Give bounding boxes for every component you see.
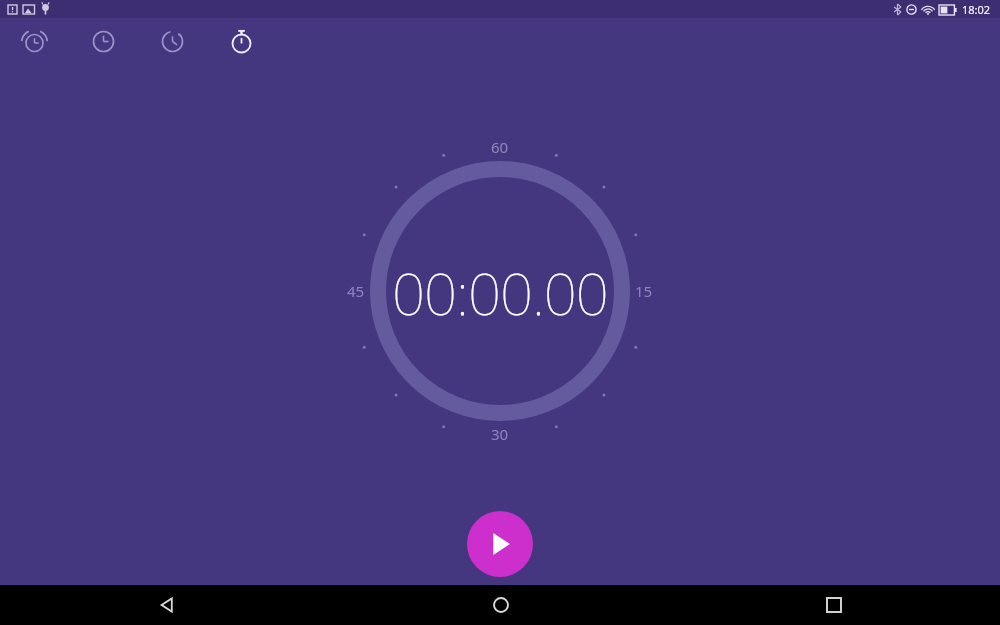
staticText: 60 — [491, 137, 509, 157]
button[interactable]: Recents — [667, 585, 1000, 625]
button[interactable]: Home — [334, 585, 667, 625]
button[interactable]: Alarm — [13, 20, 55, 62]
button[interactable]: Clock — [82, 20, 124, 62]
button[interactable]: Timer — [151, 20, 193, 62]
staticText: 30 — [491, 424, 509, 444]
button[interactable]: Back — [0, 585, 334, 625]
button[interactable]: Start — [467, 511, 533, 577]
staticText: 00:00.00 — [392, 253, 608, 332]
staticText: 15 — [635, 281, 653, 301]
staticText: 45 — [347, 281, 365, 301]
button[interactable]: Stopwatch — [220, 20, 262, 62]
staticText: 18:02 — [962, 2, 991, 17]
